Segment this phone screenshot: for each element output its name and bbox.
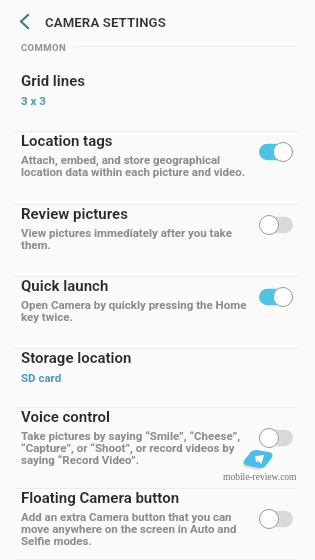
staticText: Voice control	[21, 408, 111, 426]
button[interactable]: Grid lines	[0, 72, 315, 132]
button[interactable]: Floating Camera button	[0, 489, 315, 560]
staticText: Review pictures	[21, 205, 128, 223]
button[interactable]: Switch, on	[256, 140, 296, 164]
staticText: Take pictures by saying “Smile”, “Cheese…	[21, 429, 241, 466]
button[interactable]: Switch, on	[256, 285, 296, 309]
staticText: Add an extra Camera button that you can …	[21, 510, 237, 547]
button[interactable]: Quick launch	[0, 277, 315, 349]
button[interactable]: Location tags	[0, 132, 315, 205]
staticText: 3 x 3	[21, 94, 46, 107]
button[interactable]: Review pictures	[0, 205, 315, 277]
staticText: mobile-review.com	[223, 472, 297, 483]
staticText: Location tags	[21, 132, 113, 150]
staticText: SD card	[21, 371, 62, 384]
button[interactable]: Switch, off	[256, 507, 296, 531]
button[interactable]: Switch, off	[256, 213, 296, 237]
staticText: Quick launch	[21, 277, 109, 295]
button[interactable]: Switch, off	[256, 426, 296, 450]
button[interactable]: Voice control	[0, 408, 315, 489]
staticText: View pictures immediately after you take…	[21, 226, 232, 251]
staticText: Attach, embed, and store geographical lo…	[21, 153, 246, 178]
staticText: Grid lines	[21, 72, 86, 90]
button[interactable]: Navigate up	[10, 7, 38, 35]
staticText: CAMERA SETTINGS	[45, 15, 166, 30]
button[interactable]: Storage location	[0, 349, 315, 408]
staticText: Floating Camera button	[21, 489, 180, 507]
staticText: COMMON	[21, 42, 67, 53]
staticText: Storage location	[21, 349, 132, 367]
staticText: Open Camera by quickly pressing the Home…	[21, 298, 247, 323]
